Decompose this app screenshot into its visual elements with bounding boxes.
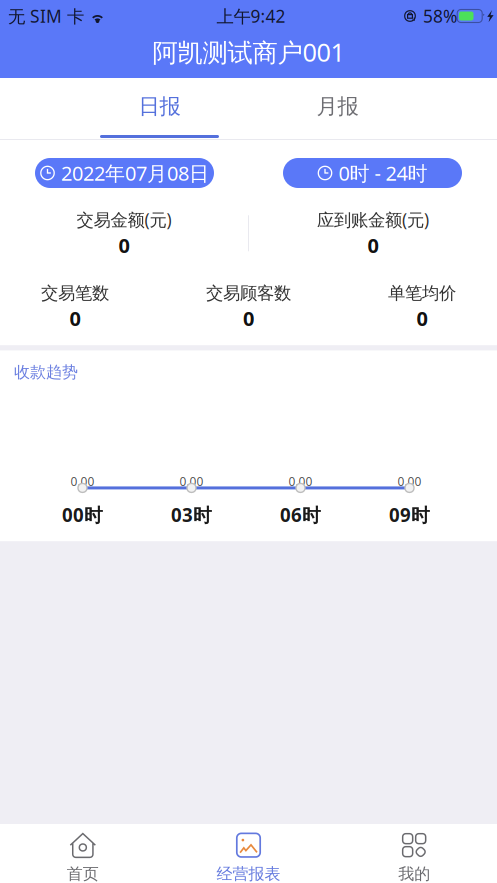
staticText: 日报 [138,93,180,120]
staticText: 月报 [316,93,358,120]
staticText: 0.00 [179,473,203,489]
staticText: 交易笔数 [41,283,109,304]
staticText: 09时 [389,502,430,527]
staticText: 0 [243,305,254,331]
staticText: 上午9:42 [216,4,285,27]
staticText: 收款趋势 [14,362,78,382]
staticText: 应到账金额(元) [317,208,429,231]
staticText: 无 SIM 卡 [8,4,84,27]
staticText: 0 [118,232,129,259]
staticText: 0时 - 24时 [338,160,427,186]
staticText: 00时 [62,502,103,527]
button[interactable]: 我的 [331,824,497,883]
staticText: 58% [423,4,457,27]
staticText: 经营报表 [216,864,280,883]
button[interactable]: 月报 [248,78,426,139]
button[interactable]: 首页 [0,824,166,883]
button[interactable]: 2022年07月08日 [35,158,214,188]
staticText: 03时 [171,502,212,527]
staticText: 0.00 [397,473,421,489]
button[interactable]: 日报 [70,78,248,139]
staticText: 交易金额(元) [76,208,171,231]
staticText: 0 [69,305,80,331]
staticText: 0.00 [288,473,312,489]
staticText: 2022年07月08日 [61,160,209,186]
staticText: 单笔均价 [388,283,456,304]
button[interactable]: 0时 - 24时 [283,158,462,188]
staticText: 0 [416,305,427,331]
staticText: 我的 [398,864,430,883]
staticText: 0.00 [70,473,94,489]
staticText: 阿凯测试商户001 [152,35,344,69]
staticText: 0 [367,232,378,259]
button[interactable]: 经营报表 [166,824,331,883]
staticText: 交易顾客数 [206,283,291,304]
staticText: 首页 [67,864,99,883]
staticText: 06时 [280,502,321,527]
